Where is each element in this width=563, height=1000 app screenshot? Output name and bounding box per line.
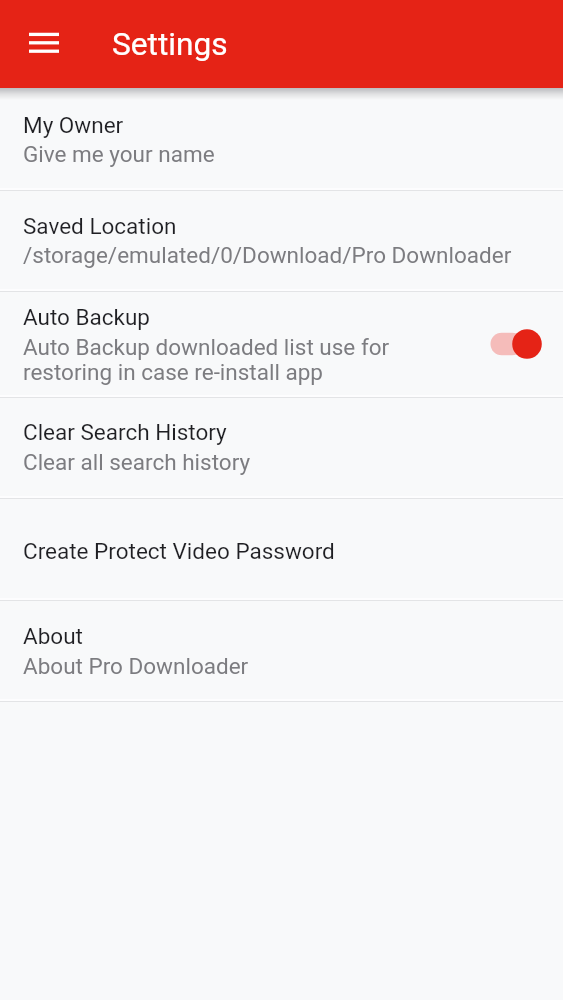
staticText: About Pro Downloader (23, 653, 249, 679)
staticText: /storage/emulated/0/Download/Pro Downloa… (23, 242, 512, 268)
button[interactable]: Auto Backup, on (485, 321, 551, 369)
button[interactable]: Clear Search History (0, 398, 563, 499)
button[interactable]: Open navigation menu (15, 15, 73, 73)
staticText: About (23, 623, 83, 649)
staticText: My Owner (23, 112, 124, 138)
button[interactable]: About (0, 601, 563, 702)
staticText: Clear Search History (23, 419, 227, 445)
button[interactable]: Saved Location (0, 191, 563, 292)
staticText: Settings (112, 26, 228, 63)
button[interactable]: My Owner (0, 88, 563, 191)
button[interactable]: Create Protect Video Password (0, 499, 563, 601)
staticText: Saved Location (23, 213, 177, 239)
staticText: Give me your name (23, 141, 215, 167)
staticText: Create Protect Video Password (23, 538, 335, 564)
button[interactable]: Auto Backup (0, 292, 563, 398)
staticText: Auto Backup (23, 304, 150, 330)
staticText: Auto Backup downloaded list use for rest… (23, 334, 390, 385)
staticText: Clear all search history (23, 449, 251, 475)
